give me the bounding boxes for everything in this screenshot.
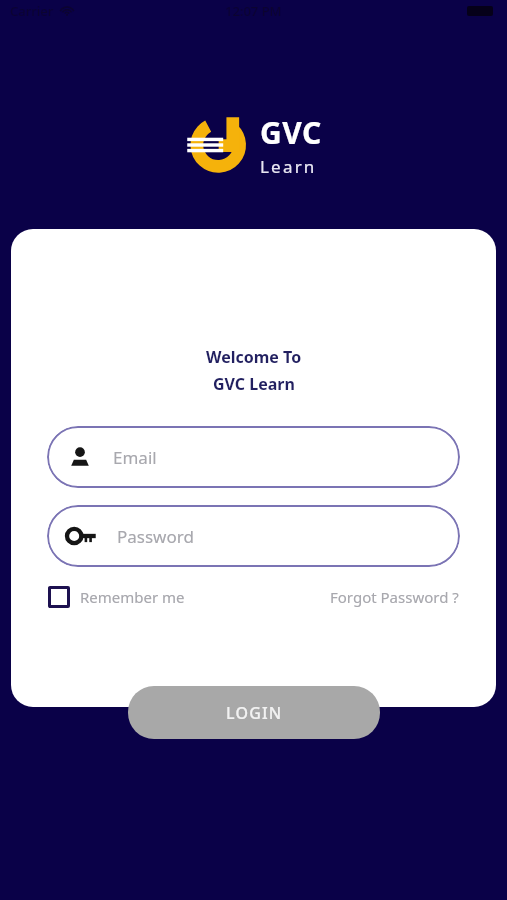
staticText: Email bbox=[113, 446, 157, 469]
staticText: GVC Learn bbox=[213, 373, 295, 395]
button[interactable]: Remember me bbox=[48, 586, 185, 608]
staticText: Learn bbox=[260, 155, 317, 178]
staticText: LOGIN bbox=[226, 702, 283, 724]
staticText: Remember me bbox=[80, 587, 185, 607]
staticText: Forgot Password ? bbox=[330, 587, 459, 607]
staticText: Password bbox=[117, 525, 194, 548]
staticText: Carrier bbox=[10, 2, 54, 20]
staticText: Welcome To bbox=[206, 346, 302, 368]
staticText: GVC bbox=[260, 112, 322, 153]
staticText: 12:07 PM bbox=[225, 2, 282, 20]
button[interactable]: Forgot Password ? bbox=[330, 587, 459, 607]
button[interactable]: Password bbox=[47, 505, 460, 567]
button[interactable]: Email bbox=[47, 426, 460, 488]
button[interactable]: LOGIN bbox=[128, 686, 380, 739]
